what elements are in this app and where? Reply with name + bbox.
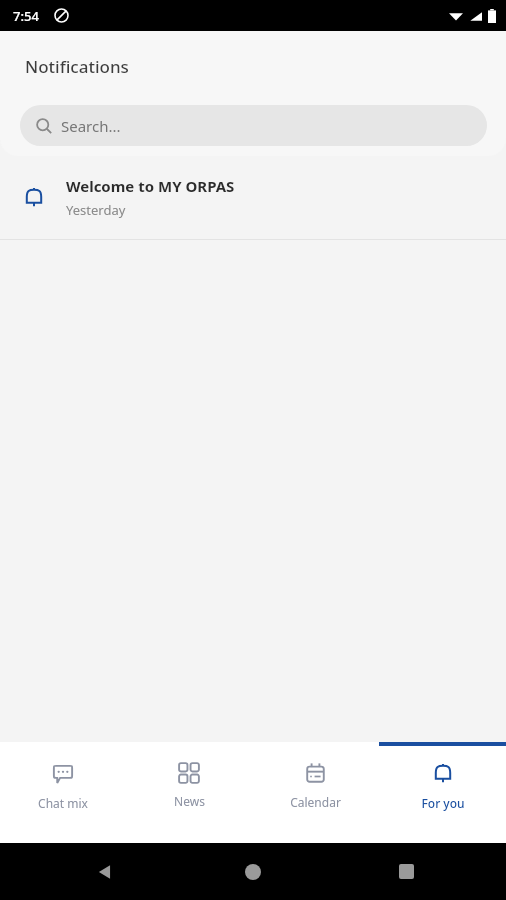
button[interactable]: Calendar bbox=[252, 746, 379, 818]
staticText: Yesterday bbox=[66, 201, 126, 219]
other: Recent apps bbox=[399, 864, 414, 879]
button[interactable]: Chat mix bbox=[0, 746, 126, 818]
staticText: Chat mix bbox=[38, 795, 88, 811]
staticText: Calendar bbox=[290, 794, 341, 810]
staticText: Welcome to MY ORPAS bbox=[66, 176, 235, 196]
staticText: Notifications bbox=[25, 55, 129, 78]
button[interactable]: News bbox=[126, 746, 252, 818]
button[interactable]: Welcome to MY ORPAS bbox=[0, 156, 506, 239]
button[interactable]: Search... bbox=[20, 105, 487, 146]
other: Home bbox=[245, 864, 261, 880]
other: Back bbox=[96, 863, 114, 881]
button[interactable]: For you bbox=[379, 746, 506, 818]
staticText: Search... bbox=[61, 116, 121, 136]
staticText: News bbox=[174, 793, 205, 809]
staticText: 7:54 bbox=[13, 7, 39, 25]
staticText: For you bbox=[421, 795, 465, 811]
